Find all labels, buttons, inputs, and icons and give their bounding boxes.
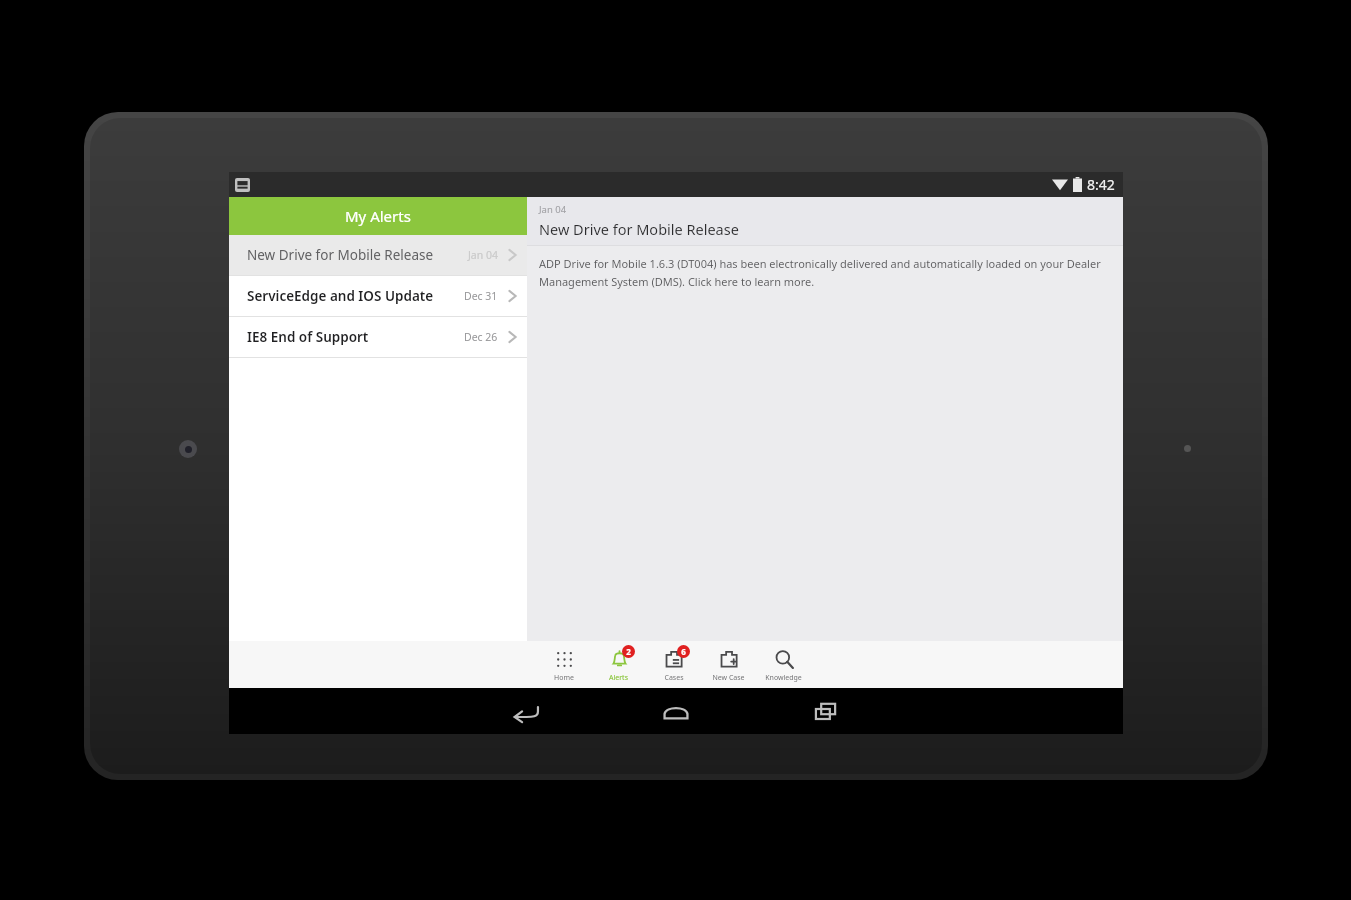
staticText: New Case [712, 673, 745, 683]
button[interactable]: Recent apps [751, 688, 901, 734]
button[interactable]: Knowledge [756, 641, 811, 688]
staticText: New Drive for Mobile Release [247, 246, 434, 264]
staticText: Dec 26 [464, 330, 498, 344]
button[interactable]: Home [536, 641, 591, 688]
staticText: Knowledge [765, 673, 802, 683]
staticText: Home [554, 673, 574, 683]
staticText: 6 [681, 646, 686, 657]
staticText: ADP Drive for Mobile 1.6.3 (DT004) has b… [539, 256, 1101, 289]
staticText: 8:42 [1087, 175, 1115, 194]
staticText: New Drive for Mobile Release [539, 219, 739, 239]
staticText: Jan 04 [539, 203, 567, 216]
button[interactable]: New Case [701, 641, 756, 688]
staticText: IE8 End of Support [247, 328, 369, 346]
staticText: Cases [664, 673, 684, 683]
button[interactable]: Alerts [591, 641, 646, 688]
button[interactable]: ServiceEdge and IOS Update [229, 276, 527, 316]
staticText: 2 [626, 646, 631, 657]
staticText: Dec 31 [464, 289, 498, 303]
staticText: ServiceEdge and IOS Update [247, 287, 434, 305]
staticText: Jan 04 [468, 248, 498, 262]
staticText: My Alerts [345, 206, 411, 226]
button[interactable]: Cases [646, 641, 701, 688]
button[interactable]: IE8 End of Support [229, 317, 527, 357]
button[interactable]: Back [451, 688, 601, 734]
button[interactable]: New Drive for Mobile Release [229, 235, 527, 275]
button[interactable]: Home [601, 688, 751, 734]
staticText: Alerts [609, 673, 628, 683]
